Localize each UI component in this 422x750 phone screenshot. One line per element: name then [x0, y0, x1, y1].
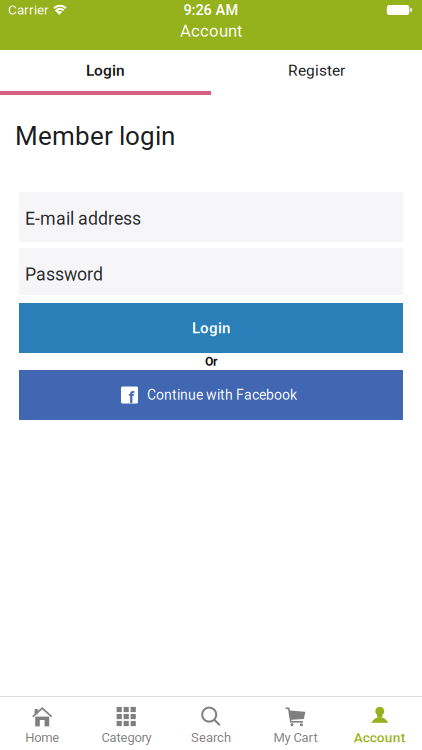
staticText: Home [25, 730, 59, 745]
staticText: Login [86, 61, 125, 79]
button[interactable]: Search [169, 698, 253, 749]
staticText: Continue with Facebook [147, 387, 297, 403]
staticText: Login [192, 319, 230, 337]
button[interactable]: f [19, 370, 403, 420]
staticText: Carrier [8, 2, 49, 18]
staticText: My Cart [273, 730, 317, 745]
staticText: 9:26 AM [183, 1, 238, 18]
staticText: Password [25, 264, 103, 285]
staticText: Category [102, 730, 152, 745]
staticText: Member login [15, 121, 175, 151]
staticText: Search [191, 730, 231, 745]
button[interactable]: E-mail address [19, 192, 403, 242]
button[interactable]: Password [19, 248, 403, 295]
button[interactable]: Account [338, 697, 422, 749]
button[interactable]: My Cart [253, 698, 338, 749]
button[interactable]: Login [19, 303, 403, 353]
staticText: Account [180, 21, 242, 41]
button[interactable]: Login [0, 50, 211, 91]
button[interactable]: Category [84, 698, 169, 749]
staticText: Account [354, 729, 406, 745]
staticText: Register [288, 61, 345, 79]
button[interactable]: Home [0, 698, 84, 749]
button[interactable]: Register [211, 50, 422, 91]
staticText: E-mail address [25, 208, 141, 229]
staticText: f [128, 388, 134, 407]
staticText: Or [205, 354, 217, 369]
